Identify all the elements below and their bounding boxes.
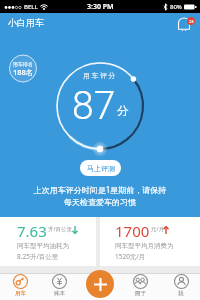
staticText: 8.25升/百公里 — [17, 252, 59, 261]
staticText: 1520元/月 — [115, 252, 146, 261]
staticText: 同车型平均油耗为 — [17, 242, 69, 250]
staticText: BELL — [24, 3, 38, 11]
button[interactable]: 用车 — [2, 274, 38, 300]
staticText: 圈子 — [135, 290, 146, 297]
button[interactable]: 圈子 — [122, 274, 158, 300]
button[interactable]: 7.63 — [0, 217, 96, 266]
staticText: 小白用车 — [8, 17, 44, 28]
staticText: 升/百公里 — [48, 225, 73, 233]
staticText: 7.63 — [17, 221, 47, 241]
staticText: 80% — [170, 3, 182, 11]
button[interactable]: 1700 — [100, 217, 200, 266]
staticText: 用车排名 — [13, 61, 33, 67]
staticText: 我 — [178, 290, 184, 297]
staticText: 87 — [72, 83, 116, 129]
button[interactable]: 我 — [163, 274, 199, 300]
button[interactable] — [86, 270, 114, 298]
staticText: 马上评测 — [87, 164, 115, 173]
button[interactable]: 账本 — [41, 274, 77, 300]
staticText: 23 — [189, 19, 194, 24]
button[interactable]: 23 — [177, 13, 195, 31]
staticText: 188名 — [13, 67, 34, 77]
staticText: 3:30 PM — [87, 2, 114, 12]
staticText: 用车 — [15, 290, 26, 297]
staticText: 分 — [117, 104, 129, 118]
staticText: 用车评分 — [0, 71, 200, 80]
staticText: 1700 — [115, 221, 150, 241]
staticText: 元/月 — [151, 225, 165, 233]
staticText: 每天检查爱车的习惯 — [0, 197, 200, 207]
staticText: 账本 — [54, 290, 65, 297]
button[interactable]: 马上评测 — [80, 160, 121, 176]
staticText: 上次用车评分时间是1星期前，请保持 — [0, 184, 200, 195]
staticText: 同车型平均月消费为 — [115, 242, 174, 250]
